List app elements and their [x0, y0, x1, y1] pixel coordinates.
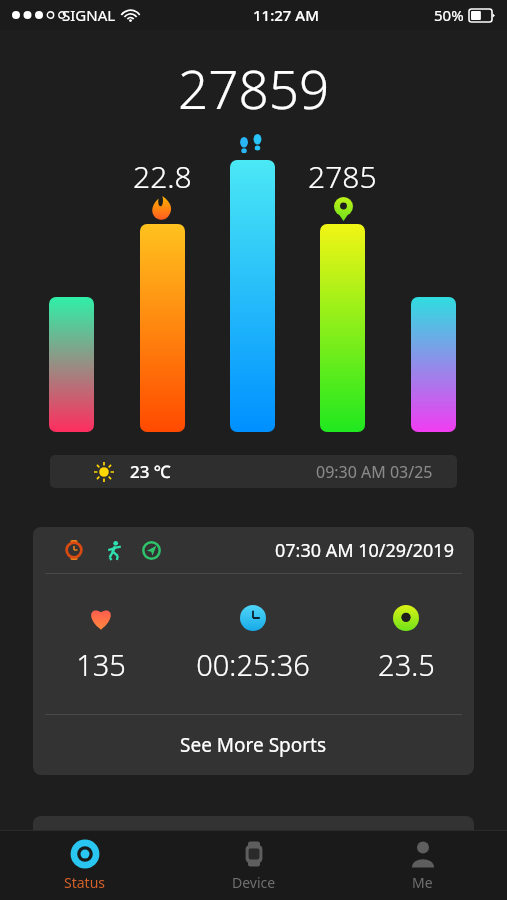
button[interactable]: 135	[33, 574, 474, 714]
staticText: Device	[232, 873, 276, 892]
staticText: Me	[412, 873, 433, 892]
button[interactable]: Device	[169, 831, 338, 900]
button[interactable]: Me	[338, 831, 507, 900]
staticText: 23 ℃	[130, 460, 171, 483]
staticText: 50%	[434, 5, 464, 25]
button[interactable]: Heart Rate	[33, 816, 474, 900]
staticText: 23.5	[378, 645, 435, 684]
button[interactable]: 07:30 AM 10/29/2019	[33, 527, 474, 573]
staticText: SIGNAL	[62, 5, 116, 25]
button[interactable]: Status	[0, 831, 169, 900]
staticText: See More Sports	[180, 732, 327, 758]
staticText: Heart Rate	[55, 828, 151, 854]
staticText: 135	[76, 645, 126, 684]
staticText: 11:27 AM	[253, 5, 319, 25]
staticText: 07:30 AM 10/29/2019	[275, 538, 454, 563]
button[interactable]: See More Sports	[33, 715, 474, 775]
staticText: 2785	[308, 156, 377, 197]
staticText: 27859	[178, 52, 330, 124]
staticText: 09:30 AM 03/25	[316, 461, 433, 483]
staticText: 00:25:36	[196, 645, 310, 684]
staticText: 22.8	[133, 156, 192, 197]
staticText: Status	[64, 873, 106, 892]
button[interactable]: 23 ℃	[50, 455, 457, 488]
